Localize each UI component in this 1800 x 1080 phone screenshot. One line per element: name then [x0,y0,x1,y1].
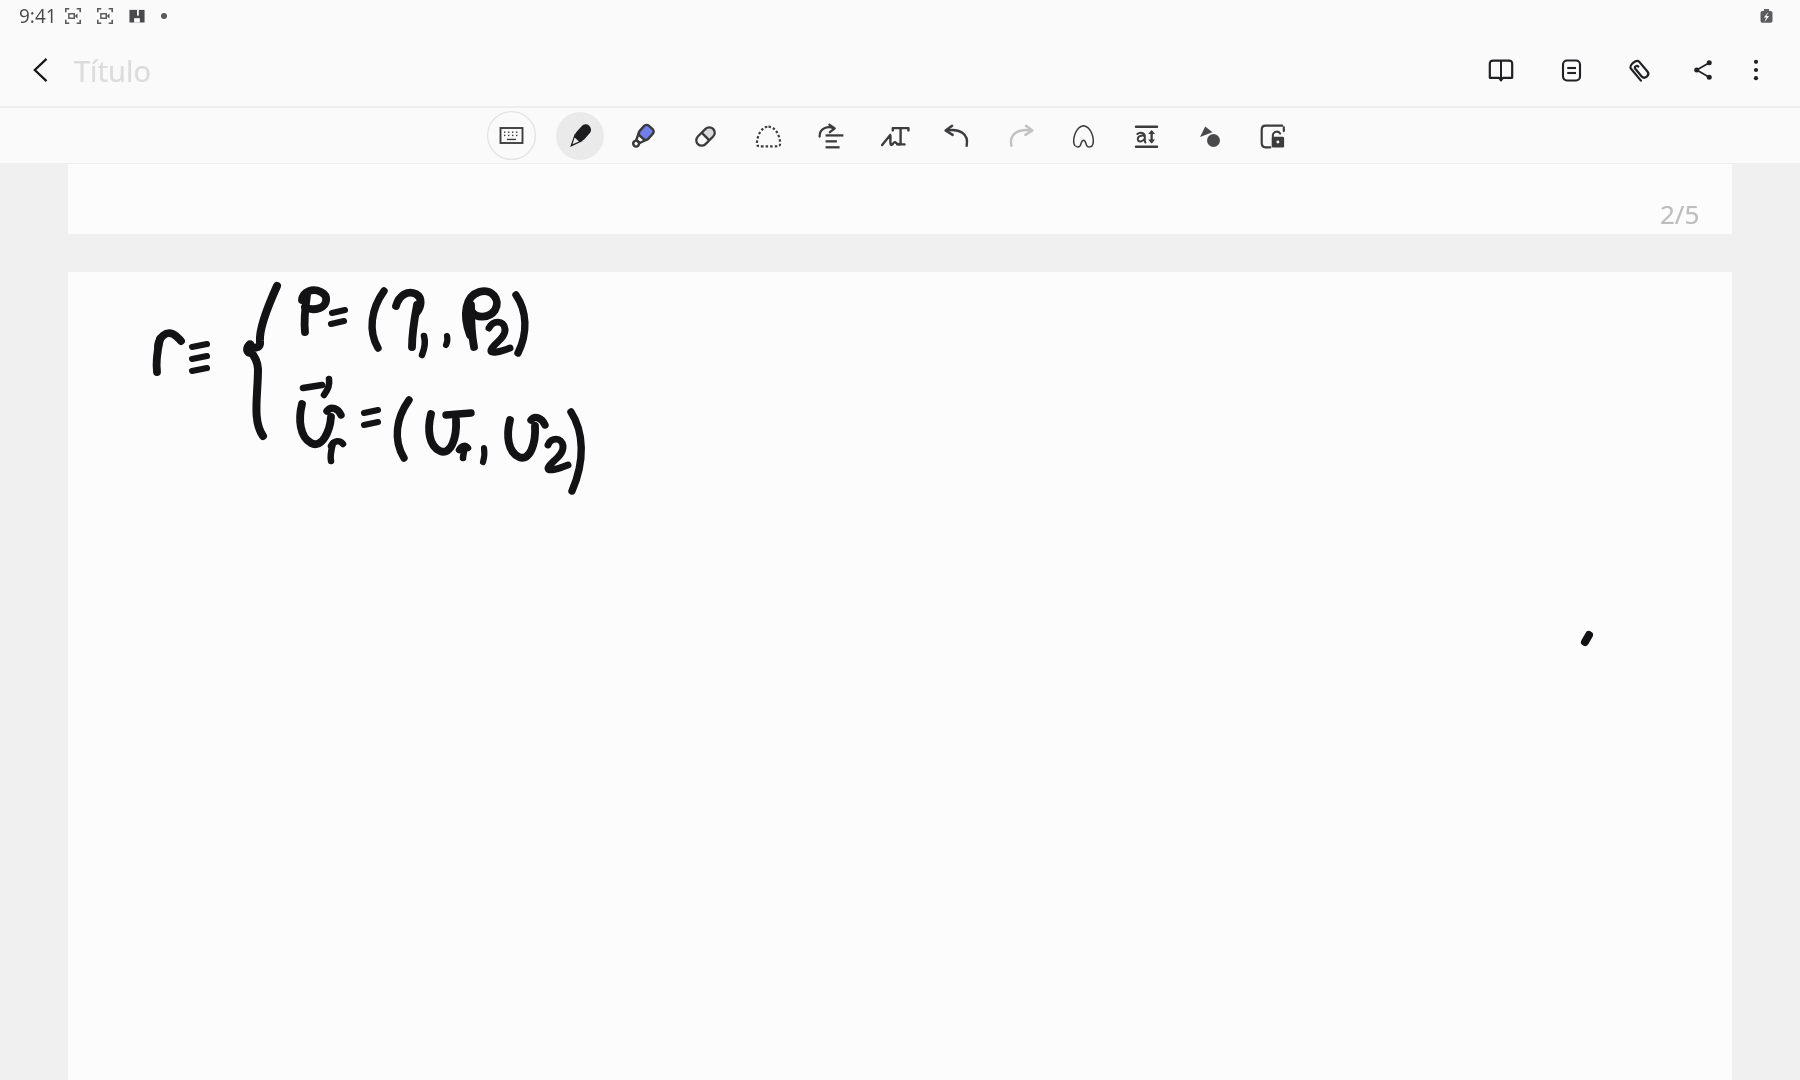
staticText: 2/5 [1660,196,1700,231]
button[interactable]: Back [0,33,80,107]
button[interactable]: Undo [926,110,989,162]
button[interactable]: Text [863,110,926,162]
button[interactable]: Eraser [674,110,737,162]
button[interactable]: More options [1733,47,1779,93]
button[interactable]: Color [1178,110,1241,162]
staticText: 9:41 [19,3,57,29]
button[interactable]: Pen [548,107,611,164]
button[interactable]: Highlighter [611,110,674,162]
button[interactable]: Lock [1241,110,1304,162]
button[interactable]: Read mode [1478,47,1524,93]
button[interactable]: Convert to text [800,110,863,162]
button[interactable]: Attach [1616,47,1662,93]
button[interactable]: Keyboard [480,107,543,164]
button[interactable]: Share [1680,47,1726,93]
button[interactable]: Text size [1115,110,1178,162]
staticText: Título [74,51,152,90]
button[interactable]: Notes list [1548,47,1594,93]
button[interactable]: Shape [1052,110,1115,162]
button[interactable]: Título [74,51,152,90]
button[interactable]: Redo [989,110,1052,162]
button[interactable]: Selection [737,110,800,162]
